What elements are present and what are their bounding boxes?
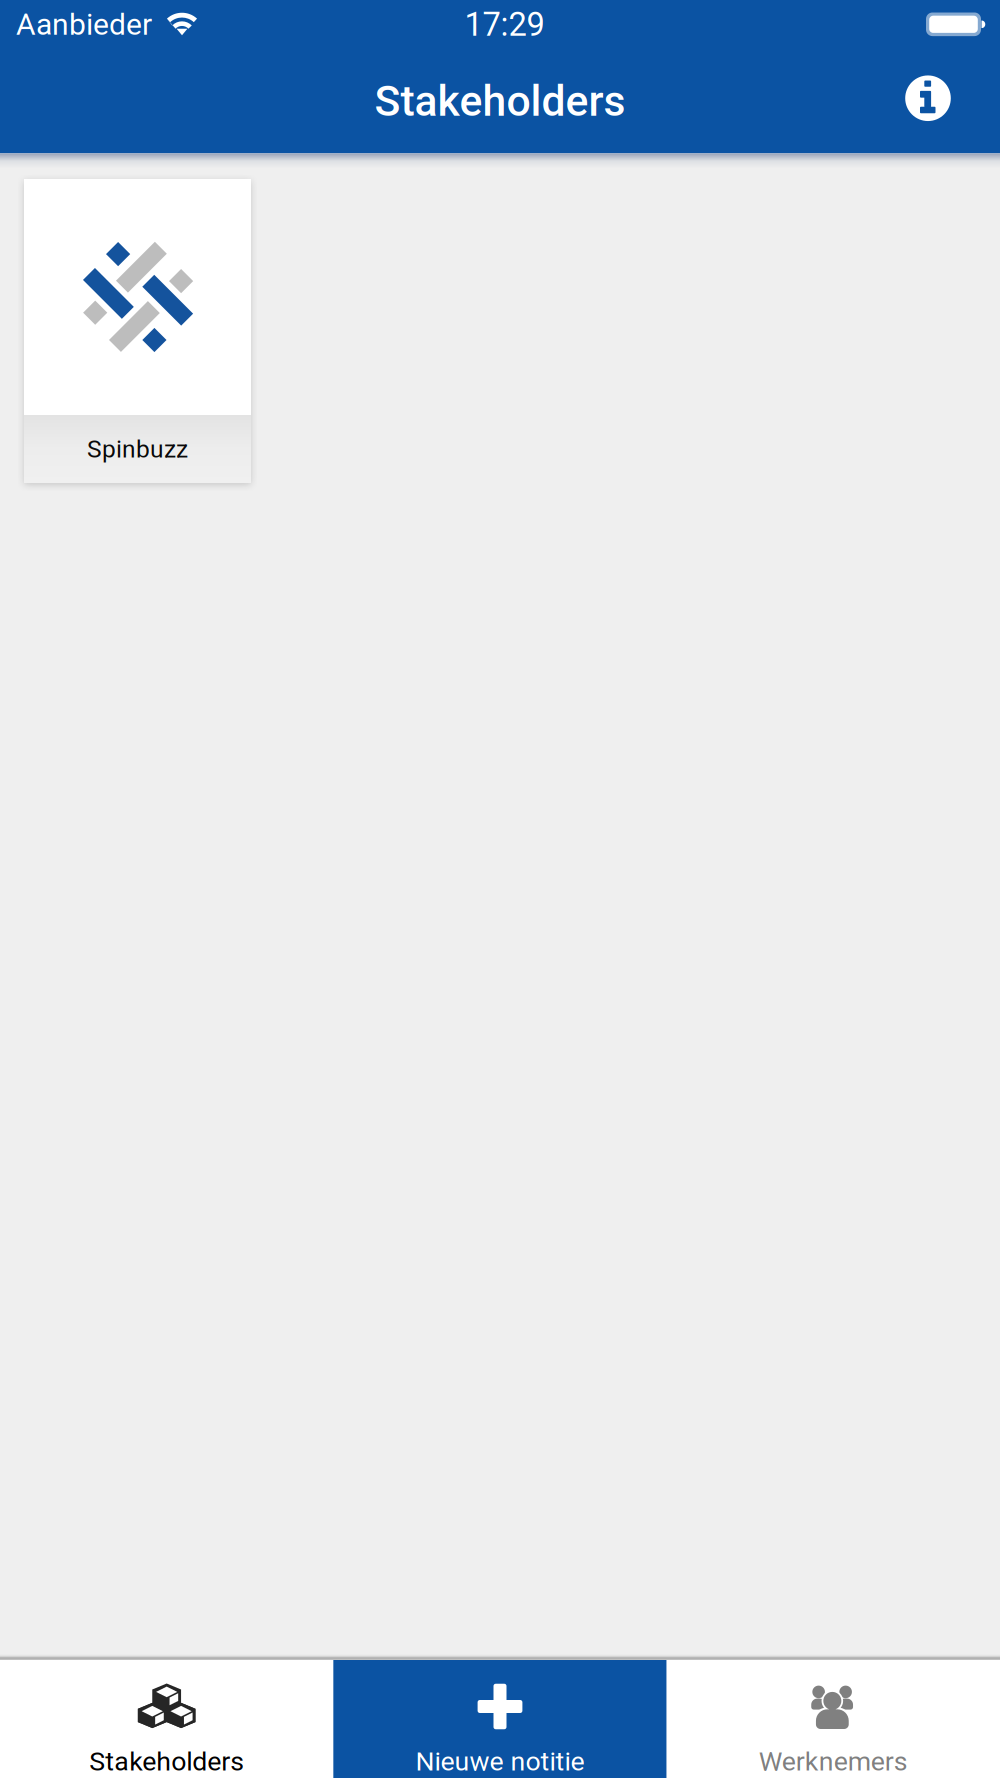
button[interactable]: Stakeholders [0, 1660, 333, 1778]
button[interactable]: Nieuwe notitie [333, 1660, 667, 1778]
staticText: Spinbuzz [87, 435, 188, 463]
staticText: 17:29 [464, 5, 544, 44]
button[interactable]: Werknemers [667, 1660, 1000, 1778]
staticText: Stakeholders [89, 1746, 244, 1777]
staticText: Aanbieder [16, 7, 152, 42]
staticText: Werknemers [759, 1746, 908, 1777]
staticText: Nieuwe notitie [415, 1746, 584, 1777]
staticText: Stakeholders [374, 76, 625, 126]
button[interactable]: Spinbuzz [24, 179, 251, 483]
button[interactable]: Info [879, 58, 977, 144]
